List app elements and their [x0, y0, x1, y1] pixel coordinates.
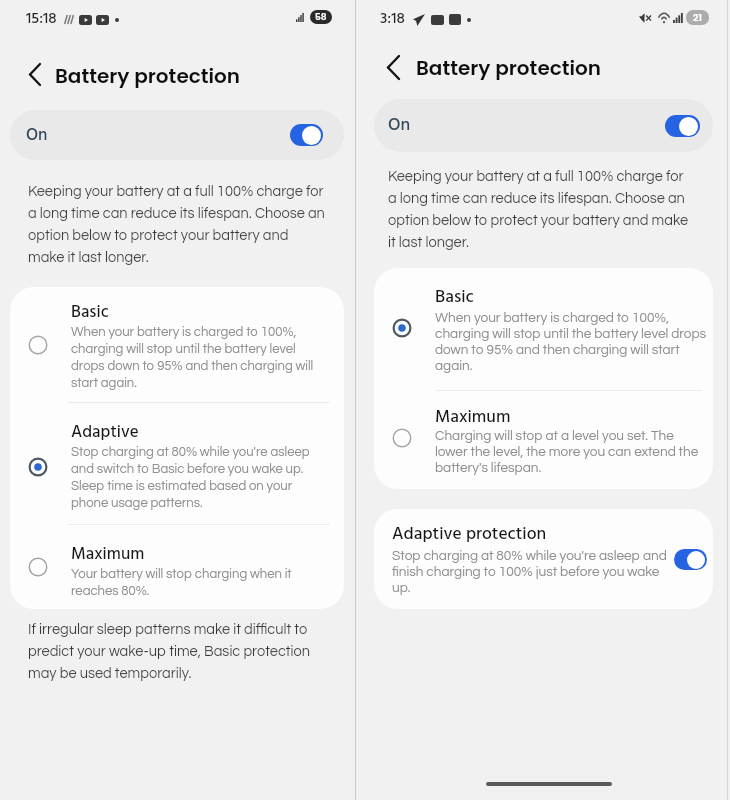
staticText: Battery protection [55, 62, 241, 90]
staticText: Charging will stop at a level you set. T… [435, 429, 705, 475]
staticText: Basic [71, 299, 109, 326]
staticText: Battery protection [416, 54, 602, 82]
button[interactable] [10, 402, 344, 524]
staticText: Adaptive [71, 419, 139, 446]
staticText: When your battery is charged to 100%, ch… [71, 325, 319, 390]
staticText: On [26, 122, 48, 149]
button[interactable]: On [10, 110, 344, 160]
staticText: On [388, 112, 411, 140]
staticText: 21 [693, 11, 702, 24]
staticText: 58 [315, 11, 327, 24]
button[interactable]: Toggle on [290, 124, 323, 146]
button[interactable] [10, 524, 344, 609]
staticText: Your battery will stop charging when it … [71, 567, 319, 598]
button[interactable]: Toggle on [665, 115, 700, 137]
button[interactable] [374, 390, 713, 489]
button[interactable]: On [374, 99, 713, 152]
button[interactable]: Back [24, 59, 46, 90]
staticText: When your battery is charged to 100%, ch… [435, 311, 707, 373]
staticText: If irregular sleep patterns make it diff… [28, 622, 330, 681]
button[interactable]: Back [382, 51, 405, 84]
staticText: Basic [435, 284, 474, 312]
button[interactable]: Toggle on [674, 549, 707, 570]
staticText: Stop charging at 80% while you're asleep… [71, 445, 319, 510]
button[interactable] [374, 268, 713, 390]
staticText: Keeping your battery at a full 100% char… [28, 184, 328, 265]
button[interactable] [10, 287, 344, 402]
staticText: Stop charging at 80% while you're asleep… [392, 549, 670, 595]
button[interactable]: Adaptive protection [374, 509, 713, 609]
staticText: Maximum [71, 541, 145, 568]
staticText: 15:18 [26, 7, 57, 32]
staticText: Adaptive protection [392, 521, 547, 549]
staticText: Maximum [435, 404, 511, 432]
staticText: 3:18 [380, 7, 405, 32]
staticText: Keeping your battery at a full 100% char… [388, 169, 692, 250]
